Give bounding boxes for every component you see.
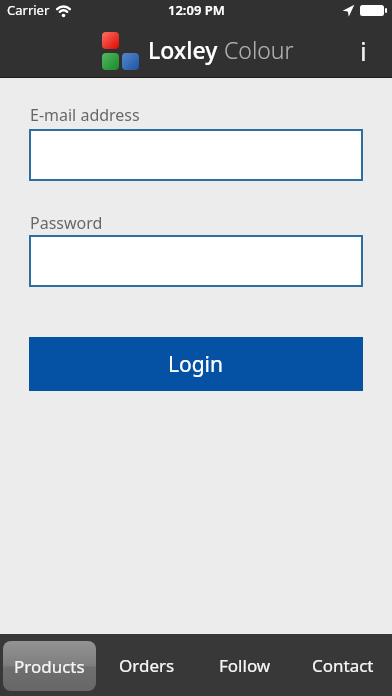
staticText: Loxley: [148, 34, 218, 65]
button[interactable]: [29, 235, 363, 287]
button[interactable]: Follow: [196, 634, 294, 696]
button[interactable]: [29, 129, 363, 181]
staticText: Login: [168, 350, 224, 379]
button[interactable]: Orders: [98, 634, 196, 696]
staticText: Orders: [119, 654, 175, 677]
button[interactable]: Contact: [294, 634, 392, 696]
staticText: Follow: [219, 654, 271, 677]
button[interactable]: Login: [29, 337, 363, 391]
staticText: Carrier: [7, 1, 50, 19]
staticText: Colour: [218, 34, 294, 65]
staticText: Contact: [312, 654, 374, 677]
staticText: E-mail address: [30, 104, 140, 126]
staticText: 12:09 PM: [168, 1, 225, 19]
staticText: Products: [14, 655, 85, 678]
staticText: Password: [30, 212, 103, 234]
staticText: i: [360, 33, 367, 68]
button[interactable]: i: [348, 30, 378, 70]
button[interactable]: Products: [3, 641, 96, 691]
